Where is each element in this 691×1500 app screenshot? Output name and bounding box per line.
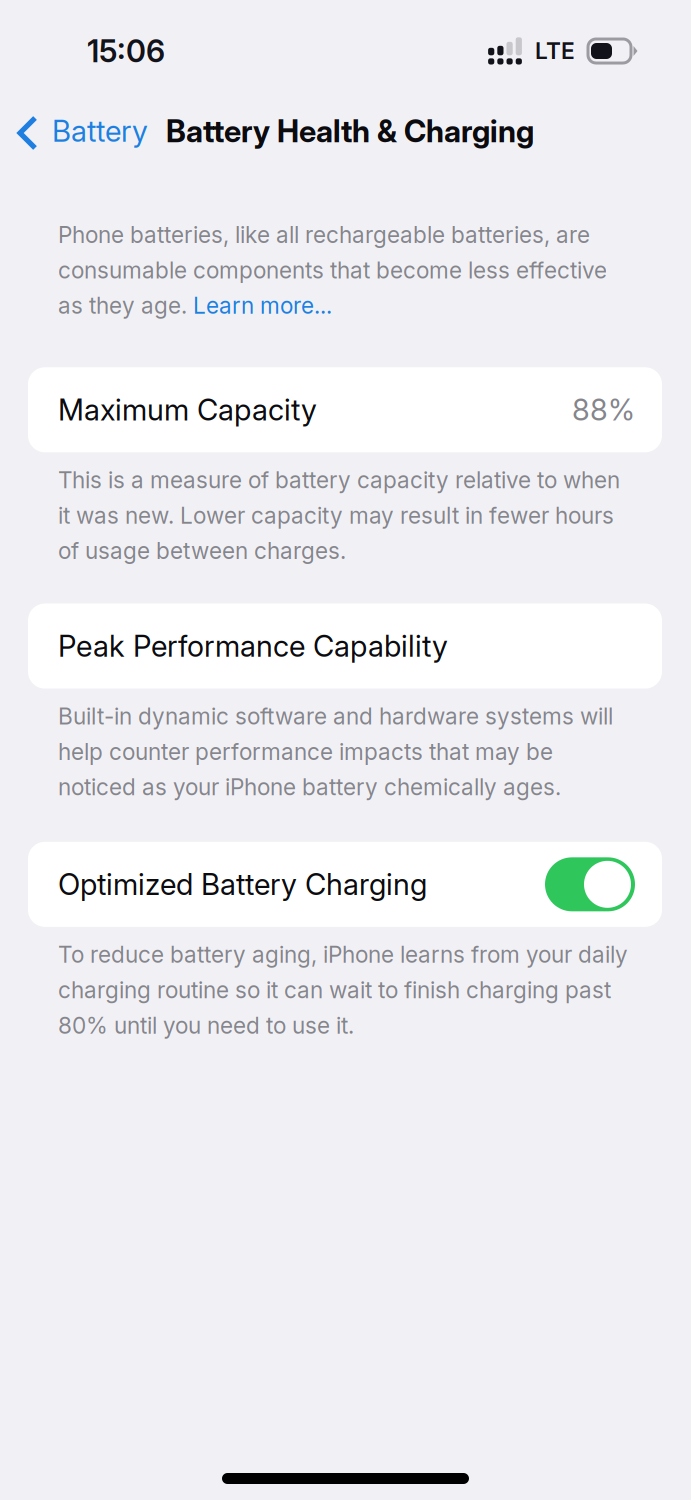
staticText: of usage between charges. <box>58 537 346 564</box>
staticText: Peak Performance Capability <box>58 628 448 664</box>
staticText: charging routine so it can wait to finis… <box>58 976 611 1004</box>
staticText: 88% <box>572 392 635 427</box>
staticText: it was new. Lower capacity may result in… <box>58 502 614 529</box>
staticText: Learn more... <box>193 292 332 319</box>
button[interactable]: Optimized Battery Charging <box>0 842 691 927</box>
button[interactable]: Peak Performance Capability <box>0 604 691 689</box>
staticText: noticed as your iPhone battery chemicall… <box>58 773 561 801</box>
staticText: To reduce battery aging, iPhone learns f… <box>58 941 628 968</box>
staticText: Optimized Battery Charging <box>58 867 427 902</box>
staticText: consumable components that become less e… <box>58 256 607 284</box>
staticText: 15:06 <box>87 32 165 69</box>
staticText: Phone batteries, like all rechargeable b… <box>58 221 590 248</box>
staticText: This is a measure of battery capacity re… <box>58 466 620 494</box>
button[interactable]: Learn more... <box>193 292 332 319</box>
staticText: Battery Health & Charging <box>166 112 534 149</box>
button[interactable]: Battery <box>0 100 166 162</box>
staticText: LTE <box>535 37 575 65</box>
staticText: Built-in dynamic software and hardware s… <box>58 703 613 730</box>
staticText: Maximum Capacity <box>58 392 317 427</box>
button[interactable]: Maximum Capacity <box>0 367 691 452</box>
staticText: help counter performance impacts that ma… <box>58 738 553 765</box>
staticText: as they age. <box>58 292 193 319</box>
staticText: 80% until you need to use it. <box>58 1012 354 1039</box>
staticText: Battery <box>52 113 148 149</box>
